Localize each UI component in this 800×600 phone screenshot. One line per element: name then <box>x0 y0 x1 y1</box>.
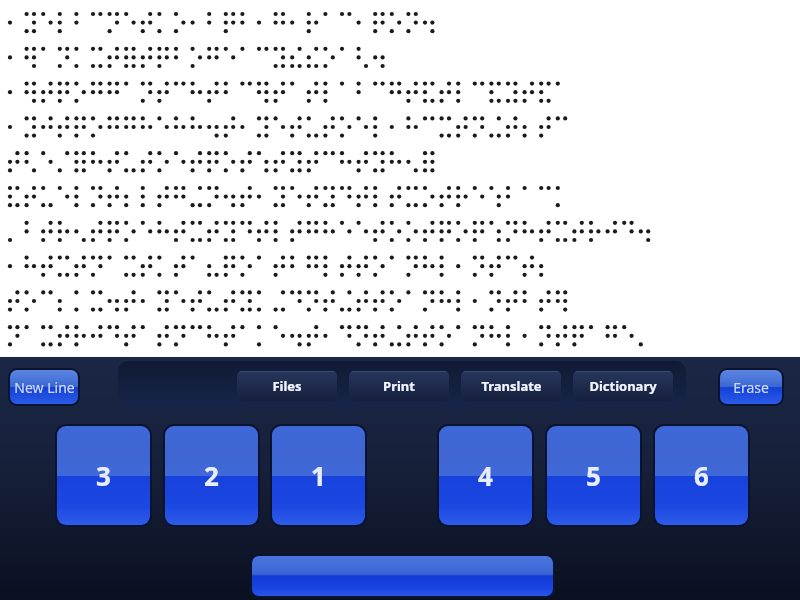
button[interactable]: 4 <box>439 426 532 525</box>
button[interactable]: Print <box>349 371 449 401</box>
staticText: Files <box>272 377 302 395</box>
staticText: 4 <box>478 458 493 493</box>
button[interactable]: 1 <box>272 426 365 525</box>
staticText: Translate <box>481 377 542 395</box>
button[interactable]: Dictionary <box>573 371 673 401</box>
staticText: Dictionary <box>589 377 657 395</box>
button[interactable]: 3 <box>57 426 150 525</box>
staticText: Print <box>383 377 415 395</box>
staticText: 3 <box>96 458 111 493</box>
staticText: 1 <box>311 458 326 493</box>
staticText: New Line <box>14 378 75 397</box>
button[interactable]: Files <box>237 371 337 401</box>
button[interactable]: 2 <box>165 426 258 525</box>
button[interactable]: Erase <box>720 370 782 404</box>
button[interactable]: Translate <box>461 371 561 401</box>
button[interactable]: 5 <box>547 426 640 525</box>
staticText: Erase <box>733 378 769 397</box>
button[interactable]: New Line <box>10 370 78 404</box>
button[interactable]: 6 <box>655 426 748 525</box>
staticText: 5 <box>586 458 601 493</box>
button[interactable]: Space <box>252 556 553 596</box>
staticText: 2 <box>204 458 219 493</box>
staticText: 6 <box>694 458 709 493</box>
